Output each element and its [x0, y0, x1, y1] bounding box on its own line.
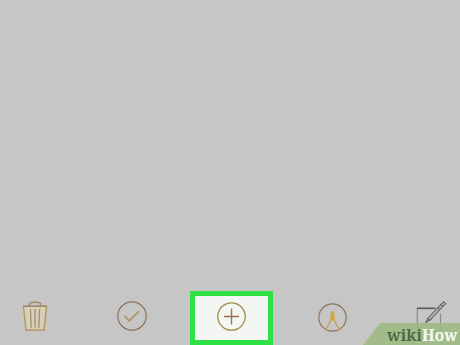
button[interactable]: Add [195, 296, 268, 340]
staticText: wiki [387, 324, 423, 345]
button[interactable]: Compass [312, 297, 352, 337]
staticText: How [422, 324, 458, 345]
button[interactable]: Delete [15, 296, 55, 336]
button[interactable]: Edit [412, 300, 448, 334]
button[interactable]: Confirm [112, 296, 152, 336]
